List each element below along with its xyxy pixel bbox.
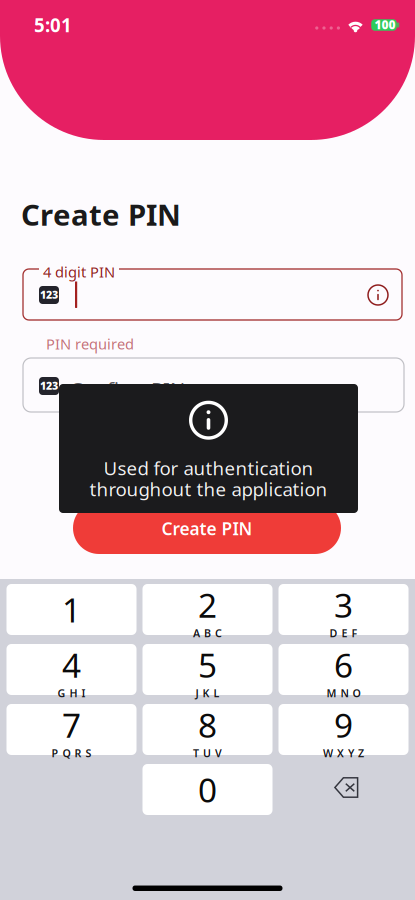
- staticText: throughout the application: [89, 476, 327, 501]
- staticText: PIN required: [46, 334, 134, 353]
- button[interactable]: 7: [6, 704, 136, 755]
- staticText: A B C: [193, 626, 222, 640]
- button[interactable]: 5: [142, 644, 272, 695]
- staticText: 4 digit PIN: [43, 262, 115, 281]
- staticText: 8: [198, 703, 217, 747]
- button[interactable]: Delete: [278, 764, 408, 815]
- button[interactable]: 1: [6, 584, 136, 635]
- staticText: 3: [334, 583, 353, 627]
- staticText: M N O: [326, 686, 360, 700]
- button[interactable]: 8: [142, 704, 272, 755]
- button[interactable]: 4: [6, 644, 136, 695]
- staticText: 5:01: [34, 13, 72, 37]
- staticText: Used for authentication: [103, 456, 313, 480]
- staticText: Create PIN: [21, 195, 181, 234]
- staticText: 2: [198, 583, 217, 627]
- staticText: 9: [334, 703, 353, 747]
- staticText: 5: [198, 643, 217, 687]
- button[interactable]: 2: [142, 584, 272, 635]
- staticText: 7: [62, 703, 81, 747]
- staticText: 1: [62, 587, 81, 632]
- staticText: 0: [198, 767, 217, 812]
- staticText: G H I: [57, 686, 85, 700]
- staticText: P Q R S: [51, 746, 91, 760]
- staticText: 123: [40, 288, 58, 302]
- staticText: 6: [334, 643, 353, 687]
- staticText: D E F: [329, 626, 357, 640]
- staticText: 100: [374, 17, 395, 32]
- button[interactable]: Create PIN: [73, 502, 341, 554]
- staticText: 123: [40, 379, 58, 393]
- button[interactable]: 0: [142, 764, 272, 815]
- staticText: Create PIN: [161, 517, 252, 540]
- button[interactable]: Information: [359, 276, 397, 314]
- staticText: Confirm PIN: [70, 376, 185, 403]
- staticText: J K L: [195, 686, 219, 700]
- button[interactable]: 9: [278, 704, 408, 755]
- staticText: 4: [62, 643, 81, 687]
- staticText: W X Y Z: [323, 746, 364, 760]
- staticText: T U V: [193, 746, 222, 760]
- button[interactable]: 6: [278, 644, 408, 695]
- button[interactable]: 3: [278, 584, 408, 635]
